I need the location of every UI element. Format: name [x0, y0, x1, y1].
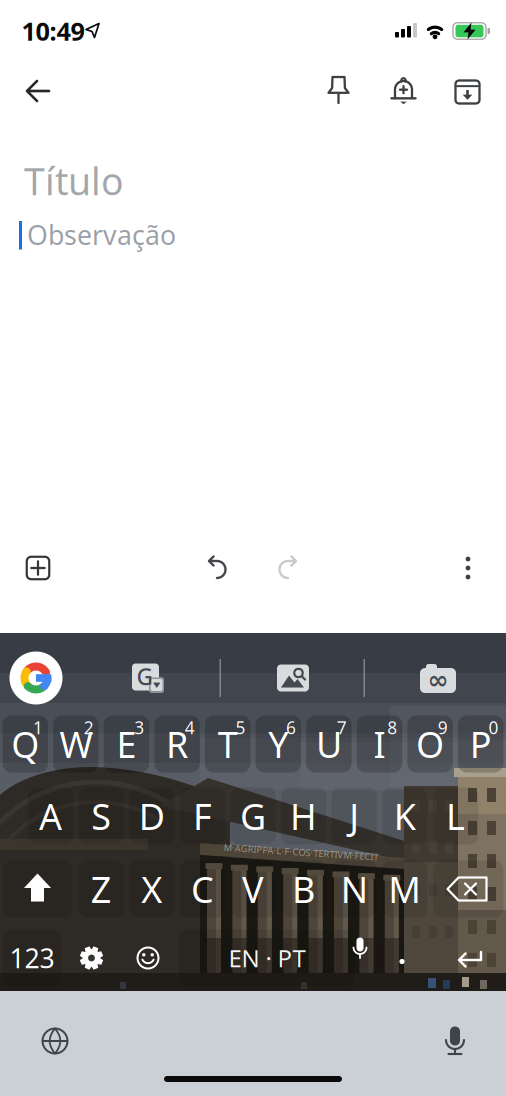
button[interactable]: Translate	[132, 663, 164, 692]
button[interactable]: Emoji	[122, 929, 173, 986]
button[interactable]: Period	[382, 929, 422, 986]
staticText: Observação	[27, 217, 176, 252]
button[interactable]: X	[129, 860, 175, 917]
staticText: R	[166, 720, 188, 768]
button[interactable]: O	[407, 715, 453, 772]
staticText: O	[416, 720, 444, 768]
button[interactable]: Keyboard settings	[66, 929, 117, 986]
staticText: N	[341, 865, 368, 913]
staticText: 1	[33, 716, 43, 739]
staticText: 7	[337, 716, 347, 739]
button[interactable]: U	[306, 715, 352, 772]
staticText: 5	[235, 716, 245, 739]
staticText: 3	[134, 716, 144, 739]
button[interactable]: More options	[462, 556, 474, 580]
button[interactable]: Undo	[203, 557, 227, 581]
staticText: 9	[438, 716, 448, 739]
button[interactable]: Y	[256, 715, 301, 772]
button[interactable]: Add reminder	[390, 77, 416, 105]
button[interactable]: Archive	[454, 78, 480, 104]
button[interactable]: V	[230, 860, 276, 917]
button[interactable]: Back	[24, 78, 52, 104]
staticText: D	[139, 792, 165, 840]
staticText: 0	[488, 716, 498, 739]
staticText: A	[39, 792, 62, 840]
staticText: 4	[185, 716, 195, 739]
button[interactable]: I	[357, 715, 402, 772]
button[interactable]: K	[382, 787, 428, 844]
button[interactable]: F	[180, 787, 225, 844]
staticText: S	[91, 792, 111, 840]
button[interactable]: G	[230, 787, 276, 844]
staticText: Y	[268, 720, 288, 768]
staticText: EN · PT	[228, 942, 305, 974]
button[interactable]: Image search	[277, 664, 309, 691]
staticText: T	[218, 720, 238, 768]
staticText: V	[242, 865, 264, 913]
staticText: Q	[11, 720, 39, 768]
staticText: W	[59, 720, 92, 768]
staticText: 2	[84, 716, 94, 739]
staticText: K	[394, 792, 416, 840]
button[interactable]: Q	[3, 715, 48, 772]
button[interactable]: R	[154, 715, 200, 772]
button[interactable]: GIF search	[420, 663, 456, 693]
button[interactable]: N	[331, 860, 377, 917]
staticText: L	[446, 792, 465, 840]
staticText: 10:49	[21, 14, 84, 48]
staticText: X	[141, 865, 162, 913]
staticText: U	[316, 720, 342, 768]
button[interactable]: P	[458, 715, 503, 772]
button[interactable]: C	[180, 860, 225, 917]
staticText: Z	[91, 865, 112, 913]
staticText: Título	[24, 156, 124, 206]
staticText: ∞	[427, 666, 448, 694]
button[interactable]: D	[129, 787, 175, 844]
staticText: P	[470, 720, 492, 768]
staticText: 6	[286, 716, 296, 739]
button[interactable]: T	[205, 715, 250, 772]
button[interactable]: B	[281, 860, 326, 917]
staticText: I	[373, 720, 385, 768]
button[interactable]: H	[281, 787, 326, 844]
button[interactable]: Return	[454, 944, 486, 974]
button[interactable]: Shift	[2, 860, 72, 917]
button[interactable]: Numbers	[2, 929, 61, 986]
staticText: M	[388, 865, 421, 913]
button[interactable]: Dictate	[440, 1024, 470, 1055]
button[interactable]: Google search	[9, 651, 62, 704]
button[interactable]: Next keyboard	[41, 1027, 69, 1055]
staticText: 8	[387, 716, 397, 739]
staticText: F	[193, 792, 212, 840]
staticText: H	[290, 792, 317, 840]
button[interactable]: Add	[25, 555, 50, 580]
button[interactable]: L	[433, 787, 478, 844]
staticText: E	[116, 720, 136, 768]
button[interactable]: Pin note	[325, 75, 351, 105]
button[interactable]: Z	[78, 860, 124, 917]
staticText: G	[136, 661, 152, 691]
button[interactable]: Redo	[278, 557, 302, 581]
button[interactable]: Voice typing	[348, 936, 372, 966]
button[interactable]: M	[382, 860, 428, 917]
button[interactable]: E	[104, 715, 149, 772]
button[interactable]: J	[331, 787, 377, 844]
staticText: M·AGRIPPA·L·F·COS·TERTIVM·FECIT	[223, 846, 378, 858]
staticText: 123	[9, 940, 54, 976]
staticText: C	[191, 865, 214, 913]
staticText: G	[240, 792, 266, 840]
staticText: J	[349, 792, 359, 840]
button[interactable]: W	[53, 715, 99, 772]
button[interactable]: Delete	[433, 860, 503, 917]
staticText: B	[292, 865, 315, 913]
button[interactable]: Space	[179, 929, 355, 986]
button[interactable]: S	[78, 787, 124, 844]
button[interactable]: A	[28, 787, 73, 844]
